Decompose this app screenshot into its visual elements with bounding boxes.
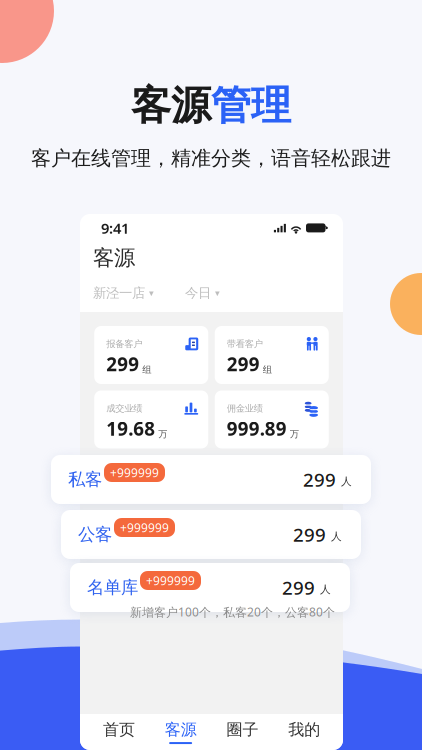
staticText: 人 bbox=[341, 475, 352, 488]
button[interactable]: 佣金业绩 bbox=[215, 390, 329, 448]
staticText: 客源 bbox=[93, 245, 135, 271]
staticText: 带看客户 bbox=[227, 338, 263, 350]
button[interactable]: 带看客户 bbox=[215, 326, 329, 384]
staticText: 299 bbox=[293, 522, 326, 547]
staticText: 管理 bbox=[211, 81, 291, 130]
staticText: 299 bbox=[227, 352, 260, 376]
staticText: 客户在线管理，精准分类，语音轻松跟进 bbox=[31, 146, 391, 171]
staticText: +999999 bbox=[120, 519, 169, 535]
staticText: 报备客户 bbox=[106, 338, 142, 350]
button[interactable]: 私客 bbox=[51, 455, 371, 504]
staticText: 今日 bbox=[185, 285, 211, 301]
staticText: 首页 bbox=[103, 720, 135, 740]
button[interactable]: 报备客户 bbox=[94, 326, 208, 384]
staticText: 299 bbox=[303, 467, 336, 492]
staticText: 私客 bbox=[68, 469, 102, 490]
button[interactable]: 名单库 bbox=[70, 563, 350, 612]
staticText: 圈子 bbox=[226, 720, 258, 740]
staticText: 19.68 bbox=[106, 416, 155, 441]
staticText: 新增客户100个，私客20个，公客80个 bbox=[130, 604, 335, 620]
staticText: 人 bbox=[331, 530, 342, 543]
staticText: 人 bbox=[320, 583, 331, 596]
staticText: 9:41 bbox=[101, 218, 129, 238]
staticText: 299 bbox=[282, 575, 315, 600]
staticText: 名单库 bbox=[87, 577, 138, 598]
staticText: 成交业绩 bbox=[106, 403, 142, 414]
staticText: 万 bbox=[290, 428, 299, 440]
staticText: 公客 bbox=[78, 524, 112, 545]
staticText: 万 bbox=[158, 428, 167, 440]
button[interactable]: 客源 bbox=[150, 714, 212, 750]
button[interactable]: 我的 bbox=[273, 714, 335, 750]
staticText: 佣金业绩 bbox=[227, 403, 263, 414]
staticText: 我的 bbox=[288, 720, 320, 740]
staticText: +999999 bbox=[110, 464, 159, 480]
button[interactable]: 成交业绩 bbox=[94, 390, 208, 448]
button[interactable]: 首页 bbox=[88, 714, 150, 750]
staticText: 299 bbox=[106, 352, 139, 376]
staticText: 组 bbox=[142, 364, 151, 375]
staticText: +999999 bbox=[146, 572, 195, 588]
staticText: 组 bbox=[263, 364, 272, 375]
button[interactable]: 公客 bbox=[61, 510, 361, 559]
button[interactable]: 新泾一店 bbox=[93, 285, 154, 301]
button[interactable]: 圈子 bbox=[211, 714, 273, 750]
staticText: 客源 bbox=[165, 720, 197, 740]
staticText: ▾ bbox=[149, 288, 154, 298]
staticText: 999.89 bbox=[227, 416, 287, 441]
staticText: 新泾一店 bbox=[93, 285, 145, 301]
staticText: ▾ bbox=[215, 288, 220, 298]
staticText: 客源 bbox=[131, 81, 211, 130]
button[interactable]: 今日 bbox=[185, 285, 220, 301]
